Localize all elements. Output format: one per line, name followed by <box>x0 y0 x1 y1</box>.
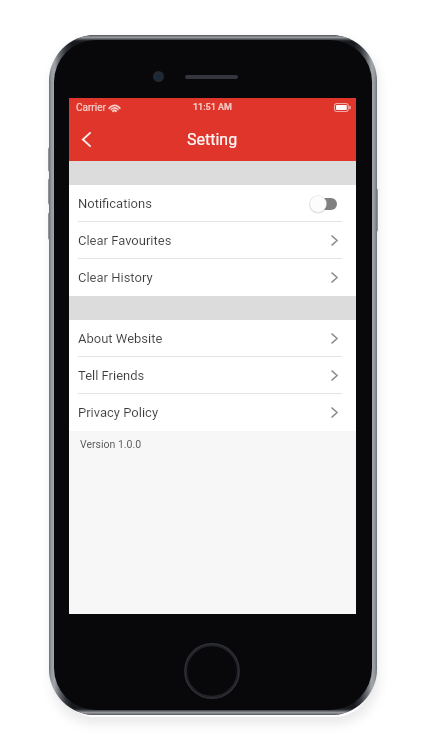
staticText: Tell Friends <box>78 368 145 383</box>
staticText: Setting <box>187 130 238 149</box>
staticText: Clear History <box>78 270 153 285</box>
button[interactable]: Clear History <box>69 259 356 296</box>
button[interactable]: Notifications <box>69 185 356 222</box>
staticText: Carrier <box>76 102 106 114</box>
staticText: 11:51 AM <box>193 102 232 113</box>
staticText: Version 1.0.0 <box>80 438 142 450</box>
staticText: Clear Favourites <box>78 233 172 248</box>
staticText: About Website <box>78 331 163 346</box>
button[interactable]: Back <box>69 117 103 161</box>
button[interactable]: Privacy Policy <box>69 394 356 431</box>
staticText: Notifications <box>78 196 152 211</box>
staticText: Privacy Policy <box>78 405 159 420</box>
button[interactable]: Clear Favourites <box>69 222 356 259</box>
button[interactable]: About Website <box>69 320 356 357</box>
button[interactable]: Tell Friends <box>69 357 356 394</box>
